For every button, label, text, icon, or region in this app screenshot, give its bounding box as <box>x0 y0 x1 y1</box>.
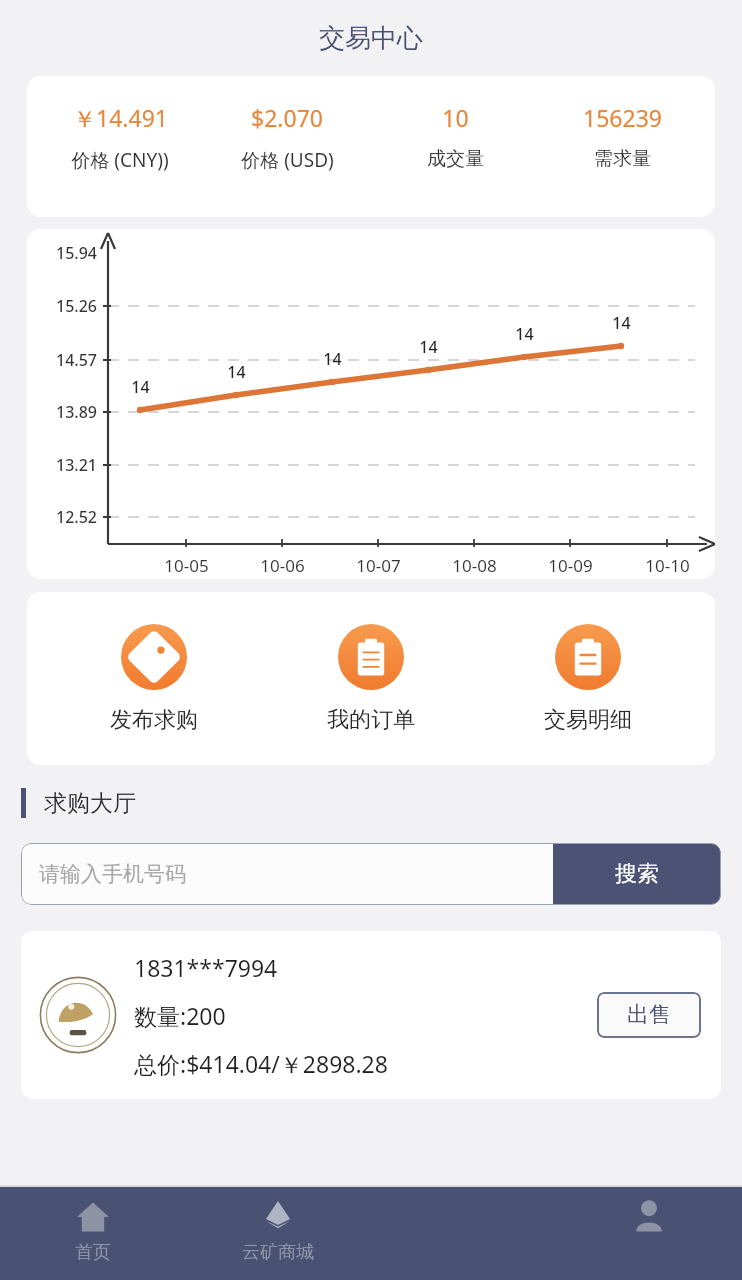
staticText: 14 <box>612 312 631 334</box>
staticText: 数量:200 <box>134 1000 226 1031</box>
staticText: 14 <box>515 323 534 345</box>
staticText: 12.52 <box>56 506 97 528</box>
staticText: 价格 (USD) <box>241 147 334 173</box>
staticText: 10-05 <box>164 554 209 577</box>
staticText: ￥14.491 <box>73 102 168 133</box>
staticText: 1831***7994 <box>134 952 278 983</box>
button[interactable]: 交易明细 <box>498 618 678 740</box>
staticText: 14.57 <box>56 349 97 371</box>
staticText: 请输入手机号码 <box>39 861 186 887</box>
staticText: 求购大厅 <box>44 789 136 818</box>
staticText: 14 <box>227 361 246 383</box>
staticText: 10-06 <box>260 554 305 577</box>
staticText: 总价:$414.04/￥2898.28 <box>134 1048 388 1079</box>
button[interactable]: Profile <box>556 1187 742 1280</box>
button[interactable]: 请输入手机号码 <box>21 843 553 905</box>
staticText: 10 <box>442 102 469 133</box>
staticText: 首页 <box>75 1241 111 1264</box>
staticText: 成交量 <box>427 147 484 171</box>
button[interactable]: 搜索 <box>553 843 721 905</box>
staticText: 14 <box>131 376 150 398</box>
staticText: 13.89 <box>56 401 97 423</box>
staticText: $2.070 <box>251 102 323 133</box>
staticText: 需求量 <box>594 147 651 171</box>
staticText: 15.26 <box>56 295 97 317</box>
staticText: 15.94 <box>56 242 97 264</box>
staticText: 10-07 <box>356 554 401 577</box>
staticText: 156239 <box>583 102 662 133</box>
staticText: 价格 (CNY)) <box>71 147 169 173</box>
staticText: 10-10 <box>645 554 690 577</box>
button[interactable]: 云矿商城 <box>185 1187 370 1280</box>
button[interactable]: 我的订单 <box>281 618 461 740</box>
staticText: 交易中心 <box>319 22 423 55</box>
staticText: 出售 <box>627 1001 671 1029</box>
staticText: 14 <box>323 348 342 370</box>
staticText: 我的订单 <box>327 706 415 734</box>
staticText: 发布求购 <box>110 706 198 734</box>
staticText: 10-09 <box>548 554 593 577</box>
staticText: 13.21 <box>56 454 97 476</box>
button[interactable]: 1831***7994 <box>21 931 721 1099</box>
button[interactable]: 发布求购 <box>64 618 244 740</box>
staticText: 搜索 <box>615 860 659 888</box>
button[interactable]: 首页 <box>0 1187 185 1280</box>
staticText: 交易明细 <box>544 706 632 734</box>
button[interactable]: 出售 <box>597 992 701 1038</box>
staticText: 云矿商城 <box>242 1241 314 1264</box>
staticText: 10-08 <box>452 554 497 577</box>
staticText: 14 <box>419 336 438 358</box>
